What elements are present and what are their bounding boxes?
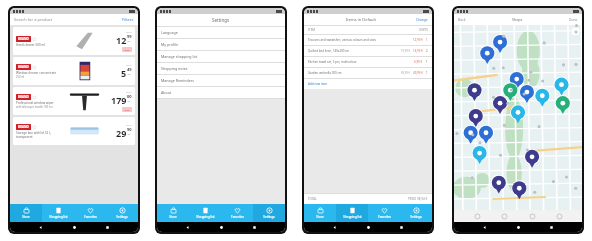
staticText: 6,99 €	[414, 60, 423, 64]
staticText: /pc	[127, 132, 131, 135]
staticText: Change	[416, 18, 428, 22]
button[interactable]: Add new item	[308, 82, 328, 86]
other: Back	[482, 225, 487, 230]
other: Recents	[105, 225, 110, 230]
button[interactable]: BRAND	[13, 117, 135, 145]
staticText: Quilted bed linen, 140x200 cm	[308, 49, 401, 53]
button[interactable]: Shopping list	[42, 204, 74, 222]
button[interactable]: Back	[458, 17, 466, 22]
staticText: Shopping list	[49, 215, 68, 219]
staticText: 99	[127, 34, 132, 39]
staticText: price	[126, 123, 132, 126]
staticText: Garden umbrella 300 cm	[308, 71, 401, 75]
staticText: 2	[426, 49, 428, 53]
button[interactable]: Garden umbrella 300 cm	[304, 68, 432, 79]
button[interactable]: Manage Reminders	[157, 75, 285, 87]
staticText: /pc	[127, 72, 131, 75]
staticText: BRAND	[18, 65, 29, 69]
staticText: BRAND	[18, 125, 29, 129]
staticText: Shops	[512, 17, 523, 22]
button[interactable]: Trousers and sweatshirt, various colours…	[304, 35, 432, 46]
staticText: Trousers and sweatshirt, various colours…	[308, 38, 413, 42]
button[interactable]: Map tool 1	[473, 212, 481, 220]
staticText: 14,99 €	[413, 49, 423, 53]
button[interactable]: Shopping notes	[157, 63, 285, 75]
other: Back	[185, 225, 190, 230]
staticText: PRICE 98,94 €	[408, 197, 428, 201]
staticText: Favorites	[231, 215, 244, 219]
button[interactable]: Settings	[253, 204, 285, 222]
button[interactable]: Store	[10, 204, 42, 222]
staticText: Store	[169, 215, 177, 219]
button[interactable]: Change	[416, 18, 428, 22]
staticText: Store	[316, 215, 324, 219]
staticText: Store	[22, 215, 30, 219]
staticText: 19,99 €	[401, 49, 411, 53]
staticText: 12	[116, 34, 127, 46]
staticText: 5	[121, 67, 127, 79]
button[interactable]: Settings	[400, 204, 432, 222]
staticText: Settings	[212, 17, 230, 23]
staticText: Shopping list	[196, 215, 215, 219]
staticText: ITEM	[308, 28, 316, 32]
staticText: Shopping notes	[161, 66, 188, 71]
button[interactable]: Favorites	[221, 204, 253, 222]
button[interactable]: Settings	[106, 204, 138, 222]
other: Recents	[252, 225, 257, 230]
staticText: Manage shopping list	[161, 54, 198, 59]
staticText: Window cleaner concentrate	[16, 71, 57, 75]
staticText: price	[126, 90, 132, 93]
other: Back	[38, 225, 43, 230]
staticText: Filters	[122, 17, 134, 22]
staticText: 69,99 €	[401, 71, 411, 75]
button[interactable]: Map tool 4	[555, 212, 563, 220]
staticText: Shopping list	[343, 215, 362, 219]
staticText: TOTAL	[308, 197, 317, 201]
staticText: with telescopic handle 180 cm	[16, 105, 53, 109]
other: Home	[366, 225, 371, 230]
staticText: Favorites	[378, 215, 391, 219]
other: Recents	[549, 225, 554, 230]
other: Home	[72, 225, 77, 230]
button[interactable]: Map tool 2	[500, 212, 508, 220]
button[interactable]: Shopping list	[189, 204, 221, 222]
staticText: /pc	[127, 99, 131, 102]
button[interactable]: Quilted bed linen, 140x200 cm	[304, 46, 432, 57]
button[interactable]: BRAND	[13, 57, 135, 85]
button[interactable]: Kitchen towel set, 3 pcs, multicolour	[304, 57, 432, 68]
staticText: Settings	[410, 215, 422, 219]
button[interactable]: Filters	[122, 17, 134, 22]
button[interactable]: Favorites	[74, 204, 106, 222]
staticText: Professional window wiper	[16, 101, 54, 105]
staticText: 179	[111, 94, 127, 106]
staticText: Settings	[263, 215, 275, 219]
button[interactable]: BRAND	[13, 27, 135, 55]
staticText: Language	[161, 30, 178, 35]
button[interactable]: Done	[569, 17, 578, 22]
other: Home	[516, 225, 521, 230]
staticText: 90	[127, 127, 132, 132]
staticText: 1	[426, 71, 428, 75]
button[interactable]: Store	[157, 204, 189, 222]
button[interactable]: Map tool 3	[528, 212, 536, 220]
staticText: BRAND	[18, 37, 29, 41]
button[interactable]: Store	[304, 204, 336, 222]
other: Home	[219, 225, 224, 230]
button[interactable]: About	[157, 87, 285, 99]
button[interactable]: Manage shopping list	[157, 51, 285, 63]
button[interactable]: BRAND	[13, 87, 135, 115]
staticText: 29	[116, 127, 127, 139]
button[interactable]: Language	[157, 27, 285, 39]
staticText: 00	[127, 94, 132, 99]
staticText: Back	[458, 17, 466, 22]
staticText: BRAND	[18, 95, 29, 99]
button[interactable]: Favorites	[368, 204, 400, 222]
button[interactable]: My profile	[157, 39, 285, 51]
button[interactable]: Shopping list	[336, 204, 368, 222]
staticText: Done	[569, 17, 578, 22]
staticText: -20%	[124, 48, 130, 51]
staticText: Hand cleaner 500 ml	[16, 43, 46, 47]
staticText: Manage Reminders	[161, 78, 194, 83]
button[interactable]: Locate me	[572, 28, 579, 35]
staticText: Settings	[116, 215, 128, 219]
